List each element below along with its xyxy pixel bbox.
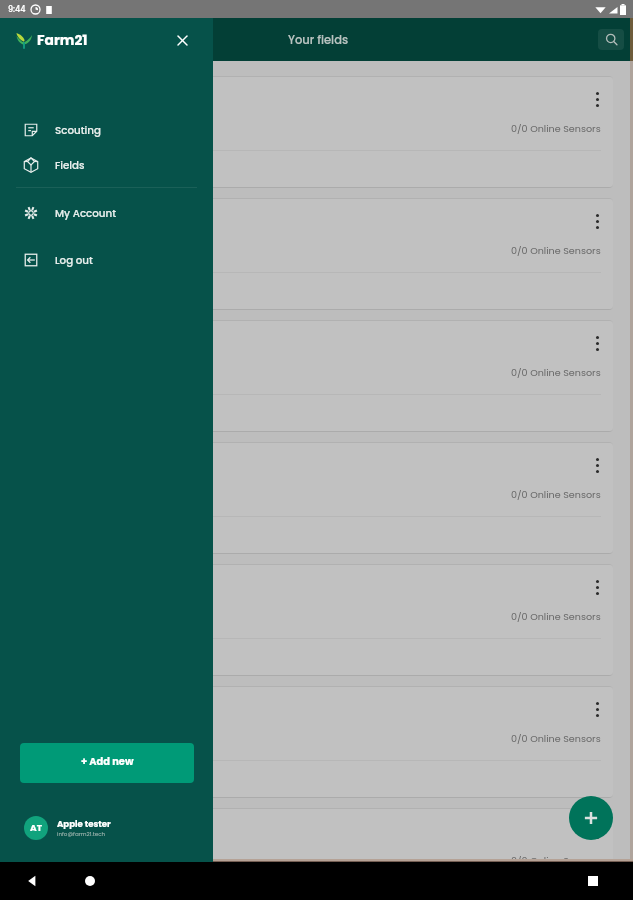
button[interactable]: More options [587, 577, 607, 597]
staticText: 0/0 Online Sensors [511, 488, 601, 501]
button[interactable]: More options [20, 687, 613, 797]
staticText: + Add new [81, 755, 134, 769]
button[interactable]: More options [587, 333, 607, 353]
staticText: 9:44 [8, 4, 26, 15]
button[interactable]: + Add new [20, 743, 194, 783]
button[interactable]: AT [24, 816, 213, 840]
staticText: Your fields [288, 32, 349, 48]
staticText: My Account [55, 206, 117, 220]
button[interactable]: More options [587, 821, 607, 841]
staticText: 0/0 Online Sensors [511, 732, 601, 745]
button[interactable]: More options [20, 809, 613, 900]
staticText: info@farm21.tech [57, 830, 106, 838]
staticText: 0/0 Online Sensors [511, 244, 601, 257]
staticText: AT [30, 822, 42, 835]
button[interactable]: More options [20, 321, 613, 431]
staticText: Log out [55, 253, 93, 267]
staticText: Fields [55, 158, 85, 172]
staticText: 0/0 Online Sensors [511, 610, 601, 623]
button[interactable]: Scouting [0, 118, 213, 142]
button[interactable]: Back [21, 870, 43, 892]
button[interactable]: More options [587, 455, 607, 475]
button[interactable]: My Account [0, 201, 213, 225]
button[interactable]: Close menu [172, 30, 192, 50]
button[interactable]: More options [20, 443, 613, 553]
button[interactable]: More options [20, 77, 613, 187]
button[interactable]: Log out [0, 248, 213, 272]
staticText: Farm21 [37, 31, 88, 50]
staticText: 0/0 Online Sensors [511, 366, 601, 379]
button[interactable]: More options [20, 565, 613, 675]
button[interactable]: Fields [0, 153, 213, 177]
button[interactable]: More options [587, 211, 607, 231]
button[interactable]: Add field [569, 796, 613, 840]
staticText: 0/0 Online Sensors [511, 854, 601, 867]
button[interactable]: More options [587, 699, 607, 719]
staticText: Apple tester [57, 818, 111, 830]
button[interactable]: Recent apps [582, 870, 604, 892]
button[interactable]: Home [79, 870, 101, 892]
button[interactable]: More options [20, 199, 613, 309]
staticText: Scouting [55, 123, 101, 137]
staticText: 0/0 Online Sensors [511, 122, 601, 135]
button[interactable]: Search [598, 29, 624, 50]
button[interactable]: More options [587, 89, 607, 109]
button[interactable]: Farm21 [16, 31, 88, 50]
